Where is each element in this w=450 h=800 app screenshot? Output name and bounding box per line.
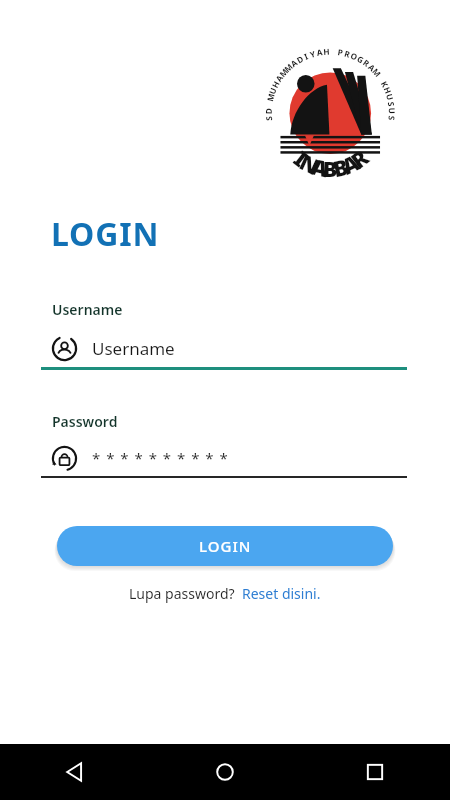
button[interactable]: Home <box>150 744 300 800</box>
staticText: Reset disini. <box>242 584 321 603</box>
staticText: Username <box>92 337 175 360</box>
button[interactable]: Reset disini. <box>242 584 321 603</box>
button[interactable]: LOGIN <box>57 526 393 566</box>
button[interactable]: Username <box>41 327 407 369</box>
staticText: * * * * * * * * * * <box>92 448 229 468</box>
button[interactable]: Back <box>0 744 150 800</box>
button[interactable]: Recents <box>300 744 450 800</box>
staticText: Username <box>52 300 123 319</box>
staticText: Lupa password? <box>129 584 235 603</box>
staticText: LOGIN <box>199 536 252 556</box>
staticText: LOGIN <box>51 212 160 256</box>
staticText: Password <box>52 412 118 431</box>
button[interactable]: * * * * * * * * * * <box>41 438 407 478</box>
